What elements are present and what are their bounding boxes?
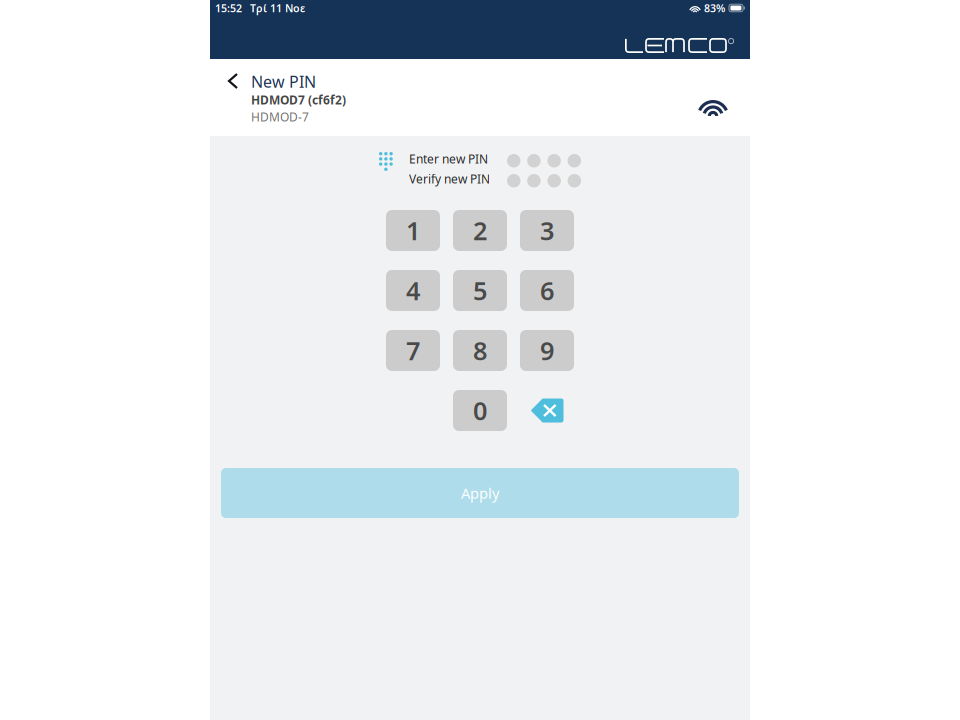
staticText: 9	[540, 334, 554, 367]
button[interactable]: 6	[520, 270, 574, 311]
staticText: Verify new PIN	[409, 171, 490, 187]
button[interactable]: Delete	[520, 390, 574, 431]
button[interactable]: 1	[386, 210, 440, 251]
button[interactable]: Apply	[221, 468, 739, 518]
staticText: 6	[540, 274, 554, 307]
staticText: HDMOD7 (cf6f2)	[251, 92, 346, 108]
button[interactable]: 4	[386, 270, 440, 311]
button[interactable]: 2	[453, 210, 507, 251]
staticText: Apply	[461, 483, 499, 503]
button[interactable]: 5	[453, 270, 507, 311]
staticText: 4	[406, 274, 420, 307]
staticText: 0	[473, 394, 487, 427]
staticText: 83%	[704, 1, 725, 15]
staticText: 1	[406, 214, 420, 247]
button[interactable]: 8	[453, 330, 507, 371]
staticText: 15:52	[215, 1, 242, 15]
button[interactable]: Back	[216, 66, 250, 96]
staticText: 5	[473, 274, 487, 307]
staticText: HDMOD-7	[251, 109, 309, 125]
staticText: Enter new PIN	[409, 151, 488, 167]
staticText: 8	[473, 334, 487, 367]
button[interactable]: 7	[386, 330, 440, 371]
button[interactable]: Wi-Fi	[693, 88, 733, 122]
button[interactable]: 0	[453, 390, 507, 431]
staticText: 2	[473, 214, 487, 247]
button[interactable]: 9	[520, 330, 574, 371]
staticText: New PIN	[251, 71, 316, 92]
button[interactable]: 3	[520, 210, 574, 251]
staticText: 3	[540, 214, 554, 247]
staticText: Τρί 11 Νοε	[250, 1, 305, 15]
staticText: 7	[406, 334, 420, 367]
